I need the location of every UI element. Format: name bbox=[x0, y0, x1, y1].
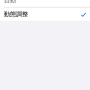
button[interactable]: 動態調整 bbox=[0, 8, 90, 21]
staticText: 自動 bbox=[4, 0, 16, 4]
button[interactable]: 自動 bbox=[0, 0, 90, 7]
staticText: 動態調整 bbox=[4, 10, 28, 18]
